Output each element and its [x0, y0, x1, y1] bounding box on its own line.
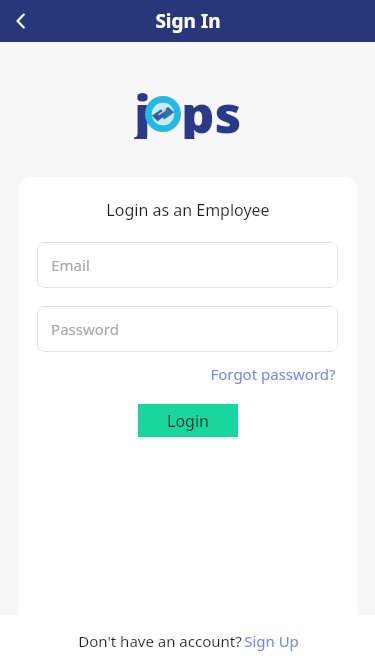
button[interactable]: Password: [37, 306, 338, 352]
staticText: Forgot password?: [210, 364, 336, 384]
staticText: Password: [51, 319, 119, 339]
button[interactable]: Email: [37, 242, 338, 288]
staticText: Don't have an account?: [76, 631, 244, 651]
button[interactable]: Sign Up: [244, 631, 299, 651]
staticText: Sign Up: [244, 631, 299, 651]
button[interactable]: Forgot password?: [208, 362, 338, 386]
button[interactable]: Back: [0, 0, 42, 42]
staticText: ps: [181, 77, 242, 139]
staticText: Email: [51, 255, 90, 275]
staticText: Sign In: [155, 8, 221, 34]
staticText: Login as an Employee: [106, 199, 270, 221]
button[interactable]: Login: [138, 404, 238, 437]
staticText: j: [134, 77, 151, 139]
staticText: Login: [167, 410, 209, 432]
